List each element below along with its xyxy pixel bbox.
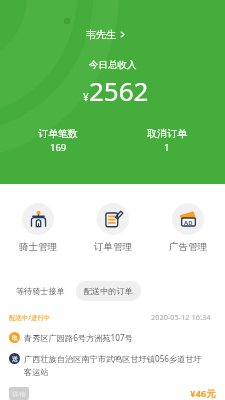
staticText: 青秀区广园路6号方洲苑107号 (24, 332, 133, 343)
button[interactable]: 订单管理 (75, 203, 150, 253)
staticText: 1 (164, 141, 170, 154)
staticText: AD (184, 219, 193, 227)
staticText: 等待骑士接单 (16, 286, 65, 296)
staticText: 配送中的订单 (84, 286, 133, 296)
staticText: ¥46元 (190, 387, 216, 400)
button[interactable]: 详情 (9, 387, 29, 400)
button[interactable]: 订单笔数 (4, 127, 112, 154)
button[interactable]: 取消订单 (112, 127, 221, 154)
button[interactable]: 配送中/进行中 (0, 301, 225, 400)
staticText: 详情 (12, 390, 26, 397)
staticText: 取 (12, 334, 18, 342)
button[interactable]: 配送中的订单 (76, 281, 141, 301)
button[interactable]: 等待骑士接单 (10, 281, 71, 301)
staticText: 骑士管理 (19, 241, 57, 253)
staticText: 送 (12, 355, 18, 363)
staticText: 169 (50, 141, 67, 154)
staticText: 广西壮族自治区南宁市武鸣区甘圩镇056乡道甘圩客运站 (24, 353, 204, 377)
staticText: 订单笔数 (38, 127, 78, 140)
staticText: 2562 (89, 73, 149, 108)
button[interactable]: 韦先生 (80, 26, 131, 43)
staticText: 广告管理 (169, 241, 207, 253)
staticText: 配送中/进行中 (9, 313, 51, 322)
staticText: 韦先生 (86, 28, 116, 41)
staticText: 2020-05-12 16:34 (151, 312, 211, 322)
staticText: 取消订单 (147, 127, 187, 140)
staticText: 订单管理 (94, 241, 132, 253)
staticText: ¥ (83, 90, 89, 104)
button[interactable]: AD (150, 203, 225, 253)
staticText: 今日总收入 (89, 59, 137, 71)
button[interactable]: 骑士管理 (0, 203, 75, 253)
